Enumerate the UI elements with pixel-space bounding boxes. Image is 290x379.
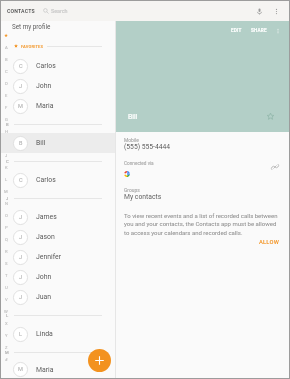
staticText: Jennifer xyxy=(36,253,62,261)
button[interactable]: More options xyxy=(273,26,283,36)
staticText: W xyxy=(4,309,8,314)
button[interactable]: J xyxy=(1,76,115,96)
staticText: To view recent events and a list of reco… xyxy=(124,212,280,237)
staticText: A xyxy=(5,45,8,50)
staticText: M xyxy=(4,189,8,194)
staticText: G xyxy=(5,117,8,122)
staticText: F xyxy=(5,105,8,110)
staticText: D xyxy=(5,81,8,86)
staticText: N xyxy=(5,201,8,206)
staticText: Y xyxy=(5,333,8,338)
staticText: Mobile xyxy=(124,137,139,143)
staticText: M xyxy=(18,103,23,110)
staticText: Maria xyxy=(36,102,54,110)
button[interactable]: ALLOW xyxy=(258,239,280,246)
button[interactable]: Search xyxy=(43,5,77,17)
staticText: ALLOW xyxy=(259,239,279,246)
staticText: M xyxy=(5,350,9,355)
staticText: J xyxy=(6,196,9,201)
staticText: J xyxy=(19,234,23,241)
button[interactable]: Linked contacts xyxy=(269,161,280,172)
staticText: FAVORITES xyxy=(21,44,44,49)
staticText: John xyxy=(36,273,52,281)
button[interactable]: SHARE xyxy=(250,26,268,36)
button[interactable]: Add contact xyxy=(88,349,111,372)
staticText: J xyxy=(5,153,8,158)
staticText: Jason xyxy=(36,233,55,241)
button[interactable]: More options xyxy=(269,4,283,18)
staticText: Maria xyxy=(36,366,54,374)
staticText: Carlos xyxy=(36,62,56,70)
staticText: E xyxy=(5,93,8,98)
staticText: EDIT xyxy=(231,28,242,34)
button[interactable]: EDIT xyxy=(230,26,243,36)
staticText: J xyxy=(19,83,23,90)
staticText: L xyxy=(6,313,9,318)
button[interactable]: Voice search xyxy=(252,4,266,18)
staticText: C xyxy=(5,69,8,74)
button[interactable]: C xyxy=(1,56,115,76)
staticText: H xyxy=(5,129,8,134)
button[interactable]: Set my profile xyxy=(1,21,115,31)
staticText: CONTACTS xyxy=(7,8,35,14)
staticText: C xyxy=(19,177,23,184)
staticText: T xyxy=(5,273,8,278)
button[interactable]: Add to favorites xyxy=(265,111,275,121)
button[interactable]: J xyxy=(1,207,115,227)
staticText: J xyxy=(19,294,23,301)
staticText: Q xyxy=(5,237,8,242)
staticText: Bill xyxy=(36,139,46,147)
staticText: Carlos xyxy=(36,176,56,184)
staticText: Bill xyxy=(128,113,138,121)
staticText: B xyxy=(6,122,9,127)
button[interactable]: J xyxy=(1,287,115,307)
button[interactable]: J xyxy=(1,267,115,287)
staticText: M xyxy=(18,366,23,373)
staticText: Set my profile xyxy=(12,23,51,30)
staticText: My contacts xyxy=(124,193,162,201)
staticText: J xyxy=(19,274,23,281)
staticText: # xyxy=(5,357,8,362)
staticText: Linda xyxy=(36,330,53,338)
button[interactable]: B xyxy=(1,133,115,153)
staticText: John xyxy=(36,82,52,90)
staticText: U xyxy=(5,285,8,290)
button[interactable]: M xyxy=(1,96,115,116)
staticText: L xyxy=(19,331,23,338)
staticText: J xyxy=(19,214,23,221)
staticText: R xyxy=(5,249,8,254)
staticText: S xyxy=(5,261,8,266)
staticText: SHARE xyxy=(251,28,267,34)
button[interactable]: C xyxy=(1,170,115,190)
button[interactable]: M xyxy=(1,361,115,378)
staticText: Groups xyxy=(124,187,140,193)
staticText: C xyxy=(6,159,9,164)
staticText: X xyxy=(5,321,8,326)
staticText: Z xyxy=(5,345,8,350)
button[interactable]: J xyxy=(1,227,115,247)
staticText: J xyxy=(19,254,23,261)
staticText: O xyxy=(5,213,8,218)
staticText: James xyxy=(36,213,57,221)
staticText: Juan xyxy=(36,293,52,301)
button[interactable]: J xyxy=(1,247,115,267)
button[interactable]: L xyxy=(1,324,115,344)
staticText: B xyxy=(5,57,8,62)
staticText: P xyxy=(5,225,8,230)
staticText: Connected via xyxy=(124,161,154,167)
staticText: C xyxy=(19,63,23,70)
staticText: B xyxy=(19,140,23,147)
staticText: L xyxy=(5,177,8,182)
staticText: V xyxy=(5,297,8,302)
staticText: K xyxy=(5,165,8,170)
staticText: (555) 555-4444 xyxy=(124,143,171,151)
staticText: Search xyxy=(51,8,68,14)
staticText: ★ xyxy=(4,33,9,38)
